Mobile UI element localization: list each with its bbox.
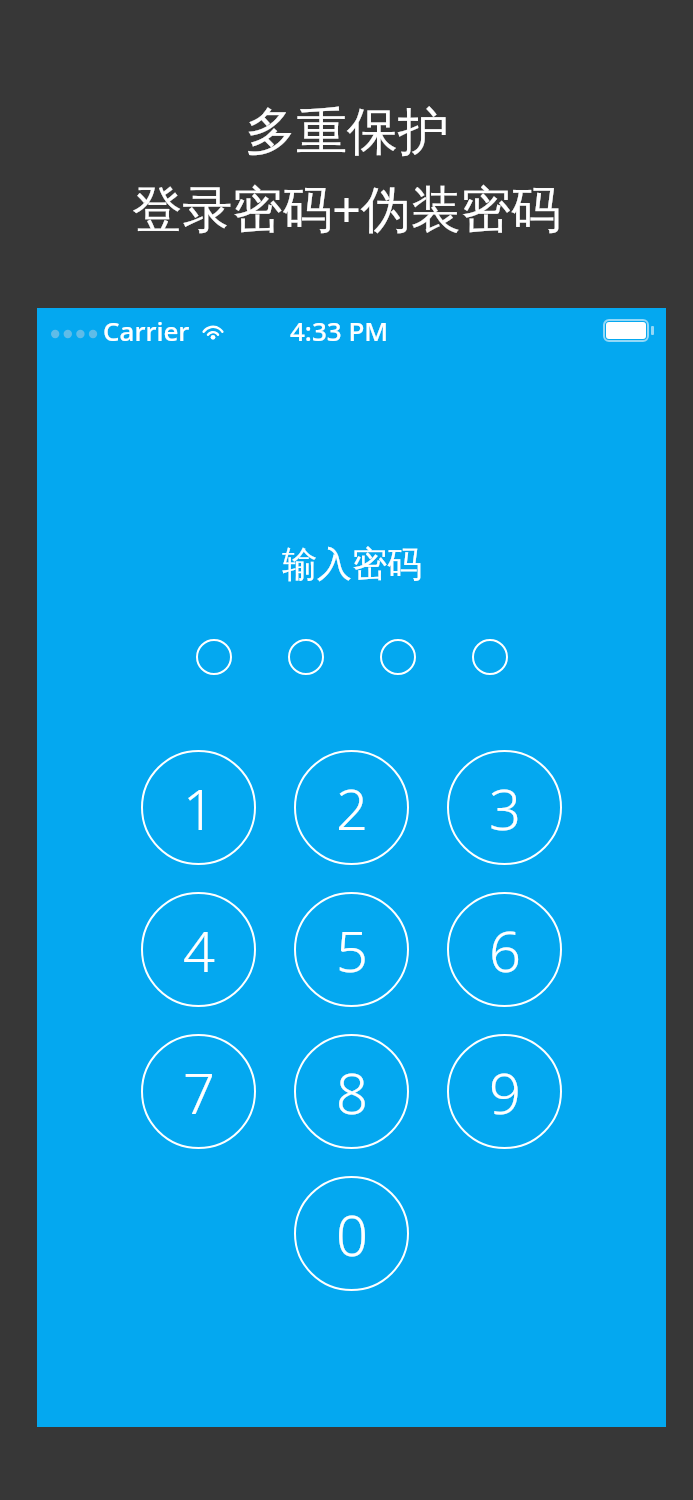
button[interactable]: 9 — [447, 1034, 562, 1149]
button[interactable]: 5 — [294, 892, 409, 1007]
staticText: 1 — [183, 770, 215, 846]
staticText: 3 — [489, 770, 521, 846]
button[interactable]: 7 — [141, 1034, 256, 1149]
staticText: 输入密码 — [282, 542, 422, 586]
button[interactable]: 8 — [294, 1034, 409, 1149]
staticText: 9 — [489, 1054, 521, 1130]
staticText: 登录密码+伪装密码 — [132, 174, 561, 242]
staticText: 2 — [336, 770, 368, 846]
staticText: 多重保护 — [245, 100, 449, 164]
button[interactable]: 2 — [294, 750, 409, 865]
staticText: 8 — [336, 1054, 368, 1130]
staticText: Carrier — [103, 313, 190, 348]
staticText: 4 — [183, 912, 215, 988]
staticText: 5 — [336, 912, 368, 988]
staticText: 6 — [489, 912, 521, 988]
button[interactable]: 4 — [141, 892, 256, 1007]
button[interactable]: 6 — [447, 892, 562, 1007]
button[interactable]: 0 — [294, 1176, 409, 1291]
button[interactable]: 3 — [447, 750, 562, 865]
staticText: 7 — [183, 1054, 215, 1130]
button[interactable]: 1 — [141, 750, 256, 865]
staticText: 4:33 PM — [290, 313, 389, 348]
staticText: 0 — [336, 1196, 368, 1272]
